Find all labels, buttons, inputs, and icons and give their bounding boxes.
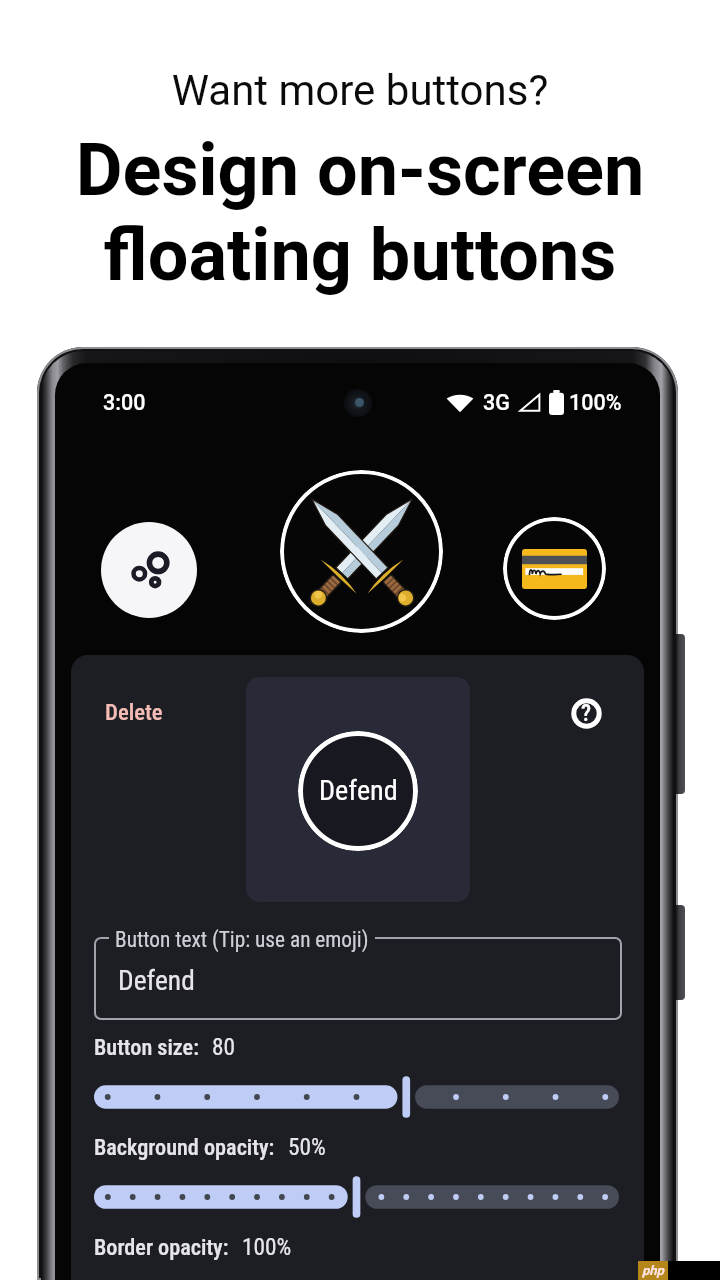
button[interactable]: Delete — [105, 699, 163, 726]
staticText: 100% — [242, 1233, 292, 1260]
staticText: 50% — [288, 1133, 326, 1160]
staticText: 3G — [483, 390, 510, 415]
button[interactable]: Help — [564, 691, 609, 736]
staticText: Background opacity: — [94, 1134, 275, 1160]
staticText: Button size: — [94, 1034, 199, 1060]
button[interactable]: Crossed swords floating button — [280, 470, 443, 633]
staticText: Defend — [319, 774, 398, 807]
staticText: 100% — [569, 390, 622, 415]
staticText: Button text (Tip: use an emoji) — [115, 927, 369, 952]
staticText: Want more buttons? — [0, 66, 720, 115]
button[interactable]: Slider — [94, 1075, 619, 1119]
staticText: Delete — [105, 699, 163, 726]
staticText: Border opacity: — [94, 1234, 229, 1260]
staticText: 80 — [212, 1033, 236, 1060]
staticText: Defend — [118, 964, 195, 996]
staticText: php — [642, 1263, 664, 1278]
button[interactable]: Credit card floating button — [503, 517, 606, 620]
button[interactable]: Slider — [94, 1175, 619, 1219]
staticText: Design on-screen floating buttons — [0, 128, 720, 298]
button[interactable]: Defend — [298, 731, 418, 851]
staticText: ? — [581, 700, 592, 727]
button[interactable]: Bubbles floating button — [101, 522, 197, 618]
staticText: 3:00 — [103, 390, 146, 415]
